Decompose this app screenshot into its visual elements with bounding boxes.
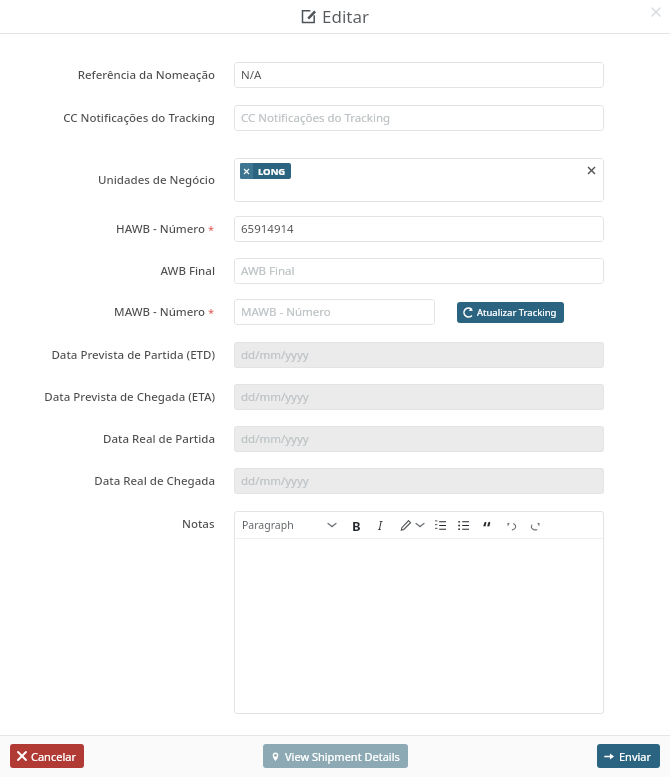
- button[interactable]: MAWB - Número: [234, 299, 435, 325]
- staticText: “: [483, 517, 491, 533]
- button[interactable]: LONG: [240, 163, 291, 179]
- button[interactable]: [234, 539, 604, 714]
- button[interactable]: Enviar: [597, 744, 660, 768]
- button[interactable]: Numbered list: [432, 517, 448, 533]
- button[interactable]: Highlight: [397, 517, 413, 533]
- staticText: dd/mm/yyyy: [241, 347, 309, 363]
- button[interactable]: dd/mm/yyyy: [234, 342, 604, 368]
- button[interactable]: CC Notificações do Tracking: [234, 105, 604, 131]
- staticText: *: [208, 222, 215, 237]
- button[interactable]: dd/mm/yyyy: [234, 468, 604, 494]
- staticText: AWB Final: [160, 263, 215, 279]
- button[interactable]: Cancelar: [10, 744, 84, 768]
- staticText: Atualizar Tracking: [477, 306, 557, 319]
- button[interactable]: Close: [648, 4, 664, 20]
- button[interactable]: Atualizar Tracking: [457, 302, 564, 323]
- button[interactable]: Quote: [479, 517, 495, 533]
- staticText: Editar: [322, 5, 369, 28]
- staticText: Data Real de Chegada: [94, 473, 215, 489]
- button[interactable]: Italic: [372, 517, 388, 533]
- staticText: Data Prevista de Partida (ETD): [51, 347, 215, 363]
- button[interactable]: Bulleted list: [455, 517, 471, 533]
- staticText: dd/mm/yyyy: [241, 473, 309, 489]
- staticText: Data Prevista de Chegada (ETA): [44, 389, 215, 405]
- staticText: MAWB - Número: [241, 304, 331, 320]
- button[interactable]: Paragraph: [242, 518, 294, 532]
- staticText: Cancelar: [31, 749, 76, 764]
- staticText: MAWB - Número: [114, 304, 205, 320]
- staticText: Data Real de Partida: [103, 431, 215, 447]
- staticText: dd/mm/yyyy: [241, 389, 309, 405]
- button[interactable]: dd/mm/yyyy: [234, 426, 604, 452]
- button[interactable]: AWB Final: [234, 258, 604, 284]
- staticText: LONG: [258, 165, 286, 178]
- button[interactable]: dd/mm/yyyy: [234, 384, 604, 410]
- button[interactable]: LONG: [234, 158, 604, 202]
- button[interactable]: Undo: [503, 517, 519, 533]
- staticText: dd/mm/yyyy: [241, 431, 309, 447]
- staticText: View Shipment Details: [285, 749, 400, 764]
- staticText: Notas: [182, 516, 215, 532]
- staticText: B: [352, 517, 361, 533]
- staticText: CC Notificações do Tracking: [63, 110, 215, 126]
- staticText: AWB Final: [241, 263, 295, 279]
- staticText: Referência da Nomeação: [77, 67, 215, 83]
- staticText: *: [208, 305, 215, 320]
- staticText: I: [378, 517, 383, 533]
- button[interactable]: 65914914: [234, 216, 604, 242]
- button[interactable]: View Shipment Details: [263, 744, 408, 768]
- button[interactable]: Redo: [527, 517, 543, 533]
- staticText: HAWB - Número: [116, 221, 205, 237]
- staticText: 65914914: [241, 221, 294, 237]
- button[interactable]: N/A: [234, 62, 604, 88]
- staticText: Unidades de Negócio: [98, 172, 215, 188]
- staticText: N/A: [241, 67, 262, 83]
- staticText: CC Notificações do Tracking: [241, 110, 391, 126]
- button[interactable]: Bold: [348, 517, 364, 533]
- button[interactable]: Clear: [585, 164, 597, 176]
- staticText: Enviar: [619, 749, 652, 764]
